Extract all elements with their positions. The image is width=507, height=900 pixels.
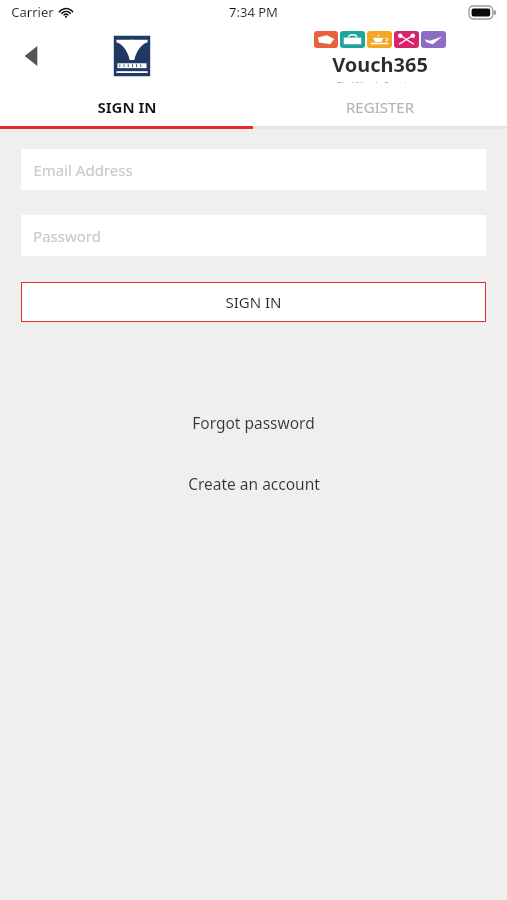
button[interactable]: Password: [21, 215, 486, 256]
button[interactable]: Back: [14, 39, 48, 73]
staticText: The Ultimate Experience: [337, 79, 423, 83]
staticText: Forgot password: [192, 412, 315, 433]
staticText: Create an account: [188, 473, 320, 494]
button[interactable]: Email Address: [21, 149, 486, 190]
staticText: SIGN IN: [97, 97, 157, 117]
staticText: SIGN IN: [225, 292, 282, 312]
button[interactable]: Create an account: [0, 470, 507, 496]
staticText: Email Address: [33, 160, 133, 180]
staticText: Vouch365: [332, 51, 428, 78]
button[interactable]: SIGN IN: [21, 282, 486, 322]
staticText: REGISTER: [346, 97, 414, 117]
staticText: Carrier: [11, 3, 54, 21]
staticText: 7:34 PM: [229, 3, 278, 21]
staticText: Password: [33, 226, 101, 246]
button[interactable]: SIGN IN: [0, 88, 253, 126]
button[interactable]: Forgot password: [0, 409, 507, 435]
button[interactable]: REGISTER: [253, 88, 507, 126]
